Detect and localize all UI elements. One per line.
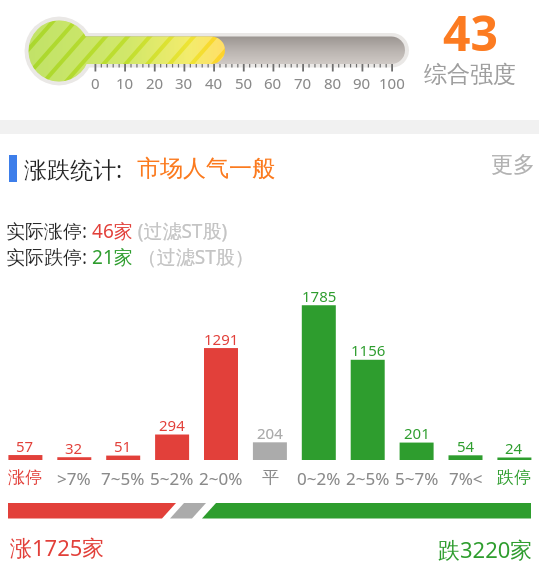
staticText: 实际涨停: 46家 (过滤ST股): [6, 218, 228, 244]
staticText: 涨1725家: [10, 532, 105, 562]
staticText: 100: [379, 73, 405, 93]
staticText: 32: [65, 438, 83, 458]
staticText: 7%<: [449, 467, 483, 490]
staticText: 201: [404, 423, 430, 443]
button[interactable]: 5~7%: [387, 467, 447, 490]
staticText: 51: [114, 436, 132, 456]
button[interactable]: >7%: [44, 467, 104, 490]
staticText: 涨跌统计:: [24, 153, 123, 184]
staticText: 90: [353, 73, 371, 93]
button[interactable]: 2~0%: [191, 467, 251, 490]
staticText: 跌3220家: [438, 534, 533, 564]
staticText: 0: [91, 73, 100, 93]
staticText: 10: [116, 73, 134, 93]
staticText: >7%: [57, 467, 91, 490]
staticText: 实际跌停: 21家 （过滤ST股）: [6, 244, 254, 270]
button[interactable]: 5~2%: [142, 467, 202, 490]
staticText: 294: [159, 415, 185, 435]
button[interactable]: 更多: [385, 151, 535, 179]
staticText: 5~7%: [395, 467, 439, 490]
staticText: 0~2%: [297, 467, 341, 490]
staticText: 40: [205, 73, 223, 93]
staticText: 综合强度: [424, 60, 516, 89]
staticText: 204: [257, 423, 283, 443]
button[interactable]: 0~2%: [289, 467, 349, 490]
staticText: 市场人气一般: [137, 154, 275, 183]
button[interactable]: 涨跌统计:: [0, 150, 539, 186]
staticText: 70: [294, 73, 312, 93]
staticText: 2~5%: [346, 467, 390, 490]
staticText: 7~5%: [101, 467, 145, 490]
staticText: 30: [175, 73, 193, 93]
button[interactable]: 2~5%: [338, 467, 398, 490]
staticText: 80: [324, 73, 342, 93]
staticText: 平: [262, 467, 279, 488]
staticText: 20: [146, 73, 164, 93]
staticText: 1156: [351, 340, 386, 360]
button[interactable]: 平: [240, 467, 300, 488]
staticText: 5~2%: [150, 467, 194, 490]
staticText: 涨停: [8, 467, 42, 488]
staticText: 54: [457, 436, 475, 456]
staticText: 2~0%: [199, 467, 243, 490]
staticText: 50: [235, 73, 253, 93]
staticText: 24: [505, 438, 523, 458]
button[interactable]: 涨停: [0, 467, 55, 488]
button[interactable]: 7%<: [436, 467, 496, 490]
button[interactable]: 跌停: [484, 467, 539, 488]
staticText: 1785: [302, 286, 337, 306]
staticText: 更多: [491, 151, 535, 179]
staticText: 57: [16, 436, 34, 456]
button[interactable]: 7~5%: [93, 467, 153, 490]
staticText: 43: [443, 0, 498, 65]
staticText: 1291: [204, 329, 239, 349]
staticText: 跌停: [497, 467, 531, 488]
staticText: 60: [264, 73, 282, 93]
